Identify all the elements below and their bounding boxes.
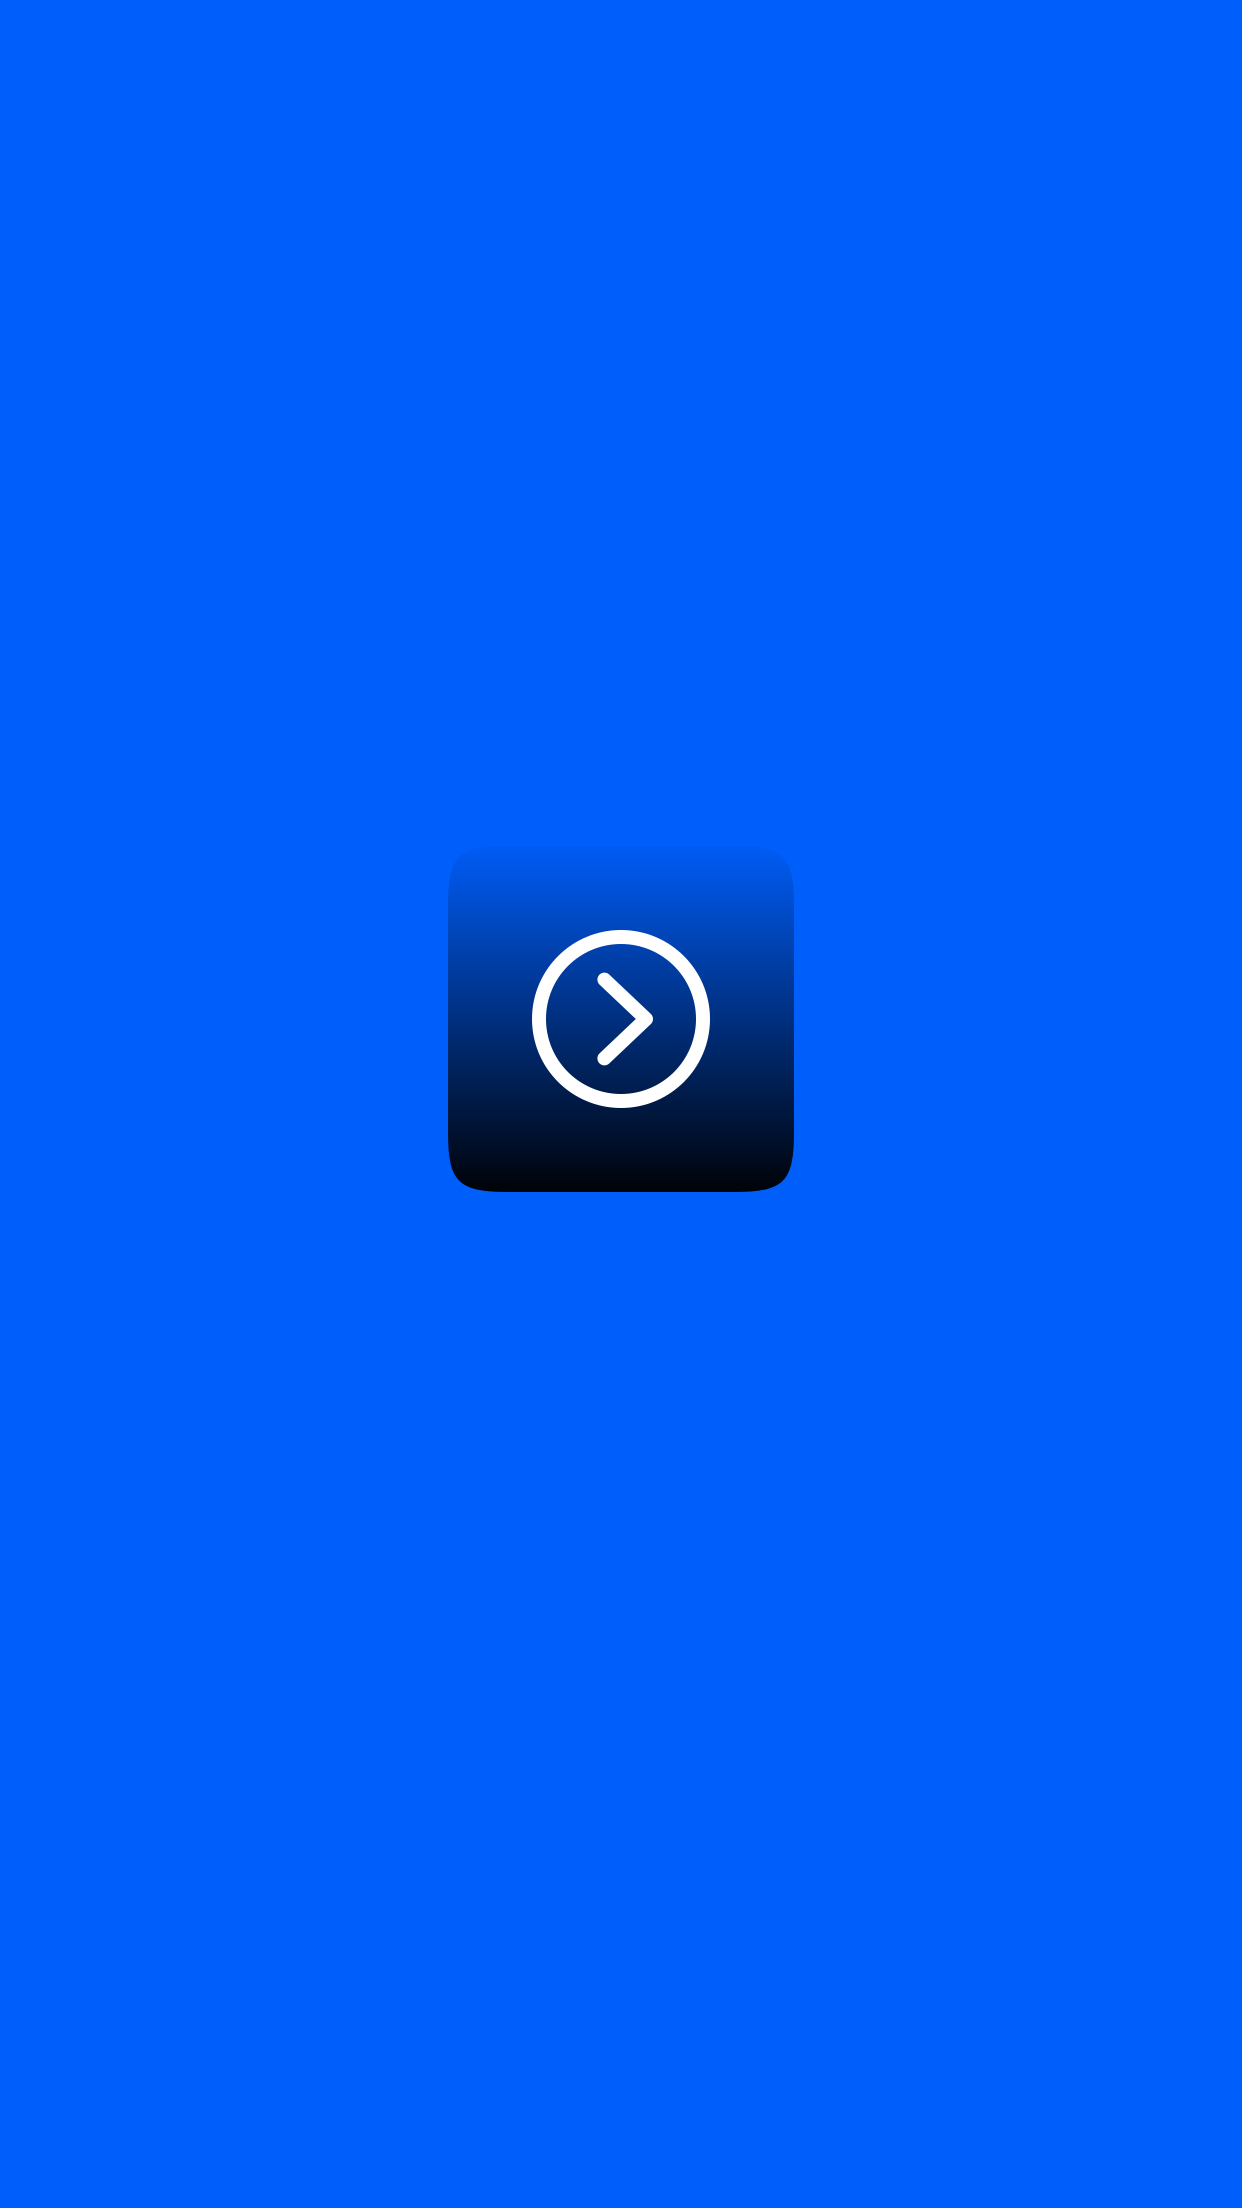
button[interactable]: Continue <box>448 846 794 1192</box>
